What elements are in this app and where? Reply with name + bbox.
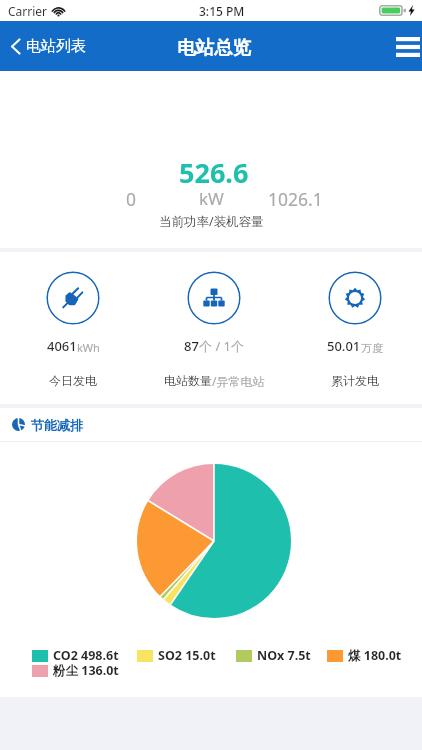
staticText: 节能减排 — [31, 417, 83, 433]
staticText: /异常电站 — [212, 373, 265, 389]
staticText: 50.01 — [327, 337, 361, 355]
staticText: kW — [199, 187, 224, 210]
staticText: 粉尘 136.0t — [53, 662, 119, 679]
staticText: 0 — [126, 187, 137, 211]
button[interactable]: 节能减排 — [0, 408, 422, 441]
staticText: 煤 180.0t — [348, 647, 402, 664]
staticText: 1026.1 — [268, 187, 323, 211]
staticText: 电站总览 — [177, 36, 251, 59]
staticText: Carrier — [8, 3, 48, 19]
staticText: 电站列表 — [26, 37, 86, 56]
staticText: 3:15 PM — [199, 3, 245, 19]
staticText: 4061 — [47, 337, 77, 355]
button[interactable]: Menu — [372, 21, 422, 71]
button[interactable]: 电站数量 — [187, 271, 241, 325]
staticText: 526.6 — [179, 154, 249, 191]
button[interactable]: 电站列表 — [0, 31, 96, 62]
staticText: 当前功率/装机容量 — [159, 213, 264, 230]
staticText: 累计发电 — [331, 373, 379, 388]
staticText: 87 — [184, 337, 199, 355]
staticText: 万度 — [361, 341, 383, 355]
staticText: SO2 15.0t — [158, 647, 216, 664]
staticText: CO2 498.6t — [53, 647, 119, 664]
staticText: NOx 7.5t — [257, 647, 311, 664]
staticText: kWh — [77, 340, 100, 355]
staticText: 电站数量 — [164, 373, 212, 388]
button[interactable]: 累计发电 — [328, 271, 382, 325]
staticText: 今日发电 — [49, 373, 97, 388]
staticText: 个 / 1个 — [199, 337, 245, 355]
button[interactable]: 今日发电 — [46, 271, 100, 325]
